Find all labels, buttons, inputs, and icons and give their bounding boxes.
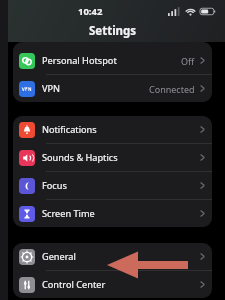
staticText: Screen Time — [42, 207, 95, 220]
button[interactable]: Focus — [13, 172, 212, 199]
staticText: Connected — [149, 83, 195, 95]
other: Arrow annotation pointing at General — [8, 42, 225, 300]
button[interactable]: Notifications — [13, 116, 212, 143]
button[interactable]: Personal Hotspot — [13, 47, 212, 74]
staticText: Off — [181, 55, 195, 67]
button[interactable]: General — [13, 243, 212, 270]
staticText: Focus — [42, 179, 67, 192]
staticText: General — [42, 250, 76, 263]
button[interactable]: Screen Time — [13, 200, 212, 227]
button[interactable]: VPN — [13, 75, 212, 102]
button[interactable]: Control Center — [13, 271, 212, 298]
staticText: Control Center — [42, 278, 106, 291]
staticText: Sounds & Haptics — [42, 151, 118, 164]
button[interactable]: Sounds & Haptics — [13, 144, 212, 171]
staticText: VPN — [42, 82, 61, 95]
staticText: Notifications — [42, 123, 97, 136]
staticText: Personal Hotspot — [42, 54, 117, 67]
staticText: Settings — [89, 23, 137, 39]
staticText: 10:42 — [78, 5, 103, 18]
